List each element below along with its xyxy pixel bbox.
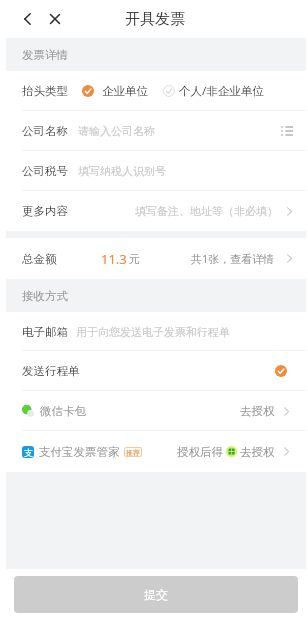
staticText: 请输入公司名称 <box>78 124 155 138</box>
staticText: 填写纳税人识别号 <box>78 164 166 178</box>
staticText: 更多内容 <box>22 204 68 218</box>
staticText: 接收方式 <box>22 289 68 303</box>
button[interactable]: 微信卡包 <box>6 391 306 431</box>
button[interactable]: 电子邮箱 <box>6 312 306 351</box>
staticText: 抬头类型 <box>22 84 68 98</box>
staticText: 总金额 <box>22 252 57 266</box>
staticText: 去授权 <box>240 404 275 418</box>
staticText: 11.3 <box>101 250 127 268</box>
button[interactable]: 企业单位 <box>82 84 148 98</box>
staticText: 企业单位 <box>102 84 148 98</box>
staticText: 发票详情 <box>22 48 68 62</box>
button[interactable]: 公司税号 <box>6 151 306 191</box>
button[interactable]: 发送行程单 <box>6 351 306 391</box>
button[interactable]: 公司名称 <box>6 111 306 151</box>
staticText: 电子邮箱 <box>22 325 68 339</box>
button[interactable]: 总金额 <box>6 238 306 279</box>
staticText: 提交 <box>144 587 168 602</box>
staticText: 支付宝发票管家 <box>39 445 120 459</box>
staticText: 授权后得 <box>177 445 223 459</box>
button[interactable]: 更多内容 <box>6 191 306 231</box>
staticText: 元 <box>129 252 140 266</box>
button[interactable]: Back <box>16 8 38 30</box>
staticText: 发送行程单 <box>22 364 80 378</box>
staticText: 支 <box>24 447 33 458</box>
button[interactable]: 提交 <box>14 576 298 613</box>
staticText: 推荐 <box>126 448 140 457</box>
staticText: 去授权 <box>240 445 275 459</box>
staticText: 开具发票 <box>125 10 185 29</box>
button[interactable]: 支 <box>6 431 306 472</box>
button[interactable]: 个人/非企业单位 <box>163 83 264 99</box>
staticText: 公司税号 <box>22 164 68 178</box>
staticText: 用于向您发送电子发票和行程单 <box>76 325 230 339</box>
staticText: 微信卡包 <box>40 404 86 418</box>
staticText: 填写备注、地址等（非必填） <box>135 204 278 218</box>
button[interactable]: Close <box>44 8 66 30</box>
staticText: 共1张，查看详情 <box>191 251 275 266</box>
staticText: 个人/非企业单位 <box>179 83 264 99</box>
staticText: 公司名称 <box>22 124 68 138</box>
